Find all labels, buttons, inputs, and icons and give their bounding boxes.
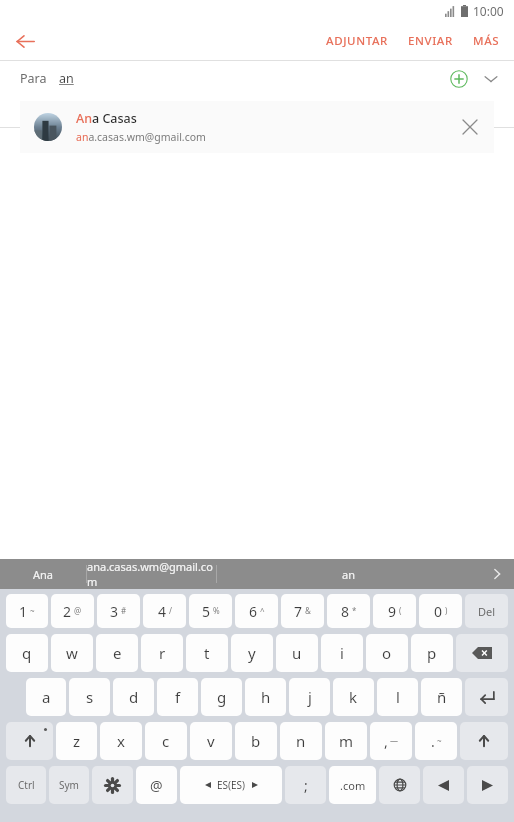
staticText: r	[159, 643, 166, 663]
staticText: ES(ES)	[217, 778, 246, 792]
button[interactable]: v	[190, 722, 232, 760]
staticText: 2	[63, 602, 72, 621]
button[interactable]: Remove recipient	[452, 109, 488, 145]
button[interactable]: Move left	[423, 766, 464, 804]
button[interactable]: u	[276, 634, 318, 672]
button[interactable]: Settings	[92, 766, 133, 804]
staticText: n	[296, 731, 306, 751]
button[interactable]: i	[321, 634, 363, 672]
button[interactable]: 1	[6, 594, 48, 628]
button[interactable]: p	[411, 634, 453, 672]
button[interactable]: .	[415, 722, 457, 760]
button[interactable]: Del	[465, 594, 508, 628]
staticText: b	[251, 731, 261, 751]
staticText: ,	[384, 732, 388, 751]
button[interactable]: 2	[51, 594, 94, 628]
staticText: 5	[202, 602, 211, 621]
button[interactable]: q	[6, 634, 48, 672]
button[interactable]: b	[235, 722, 277, 760]
button[interactable]: Language	[379, 766, 420, 804]
staticText: @	[150, 776, 163, 795]
staticText: d	[129, 687, 139, 707]
button[interactable]: 9	[373, 594, 416, 628]
button[interactable]: g	[201, 678, 242, 716]
staticText: l	[396, 687, 400, 707]
button[interactable]: 0	[419, 594, 462, 628]
button[interactable]: 7	[281, 594, 324, 628]
button[interactable]: 4	[143, 594, 186, 628]
staticText: q	[22, 643, 32, 663]
button[interactable]: Back	[8, 24, 42, 58]
staticText: k	[349, 687, 358, 707]
button[interactable]: ;	[285, 766, 326, 804]
staticText: 6	[249, 602, 258, 621]
button[interactable]: s	[69, 678, 110, 716]
button[interactable]: @	[136, 766, 177, 804]
button[interactable]: h	[245, 678, 286, 716]
button[interactable]: 3	[97, 594, 140, 628]
button[interactable]: ENVIAR	[406, 27, 455, 55]
staticText: 9	[388, 602, 397, 621]
button[interactable]: ñ	[421, 678, 462, 716]
staticText: MÁS	[473, 33, 500, 49]
button[interactable]: ADJUNTAR	[324, 27, 390, 55]
button[interactable]: o	[366, 634, 408, 672]
staticText: x	[117, 731, 125, 751]
staticText: ~	[437, 735, 442, 746]
button[interactable]: f	[157, 678, 198, 716]
button[interactable]: k	[333, 678, 374, 716]
staticText: 7	[294, 602, 303, 621]
button[interactable]: Ana Casas	[20, 101, 494, 153]
button[interactable]: d	[113, 678, 154, 716]
button[interactable]: c	[145, 722, 187, 760]
button[interactable]: m	[325, 722, 367, 760]
button[interactable]: More suggestions	[480, 559, 514, 589]
button[interactable]: ,	[370, 722, 412, 760]
button[interactable]: 8	[327, 594, 370, 628]
button[interactable]: w	[51, 634, 93, 672]
button[interactable]: .com	[329, 766, 376, 804]
button[interactable]: an	[217, 559, 480, 589]
staticText: u	[292, 643, 302, 663]
button[interactable]: 5	[189, 594, 232, 628]
staticText: )	[445, 605, 448, 616]
staticText: ^	[260, 605, 265, 616]
staticText: s	[86, 687, 94, 707]
staticText: m	[339, 731, 354, 751]
button[interactable]: z	[56, 722, 97, 760]
staticText: @	[74, 605, 82, 616]
button[interactable]: backspace	[456, 634, 508, 672]
button[interactable]: t	[186, 634, 228, 672]
button[interactable]: n	[280, 722, 322, 760]
button[interactable]: ES(ES)	[180, 766, 282, 804]
button[interactable]: MÁS	[471, 27, 502, 55]
button[interactable]: a	[26, 678, 66, 716]
button[interactable]: Ana	[0, 559, 86, 589]
staticText: ADJUNTAR	[326, 33, 388, 49]
staticText: ~	[30, 605, 35, 616]
staticText: o	[382, 643, 392, 663]
button[interactable]: r	[141, 634, 183, 672]
button[interactable]: Sym	[49, 766, 89, 804]
staticText: v	[207, 731, 215, 751]
button[interactable]: shiftdot	[6, 722, 53, 760]
staticText: an	[342, 567, 355, 582]
button[interactable]: y	[231, 634, 273, 672]
button[interactable]: Expand	[478, 66, 504, 92]
button[interactable]: ana.casas.wm@gmail.com	[87, 559, 216, 589]
staticText: ;	[304, 776, 308, 795]
button[interactable]: 6	[235, 594, 278, 628]
button[interactable]: shift	[460, 722, 508, 760]
button[interactable]: Move right	[467, 766, 508, 804]
button[interactable]: x	[100, 722, 142, 760]
staticText: g	[217, 687, 227, 707]
button[interactable]: Ctrl	[6, 766, 46, 804]
button[interactable]: l	[377, 678, 418, 716]
button[interactable]: e	[96, 634, 138, 672]
button[interactable]: Add recipient	[446, 66, 472, 92]
button[interactable]: enter	[465, 678, 508, 716]
staticText: Para	[20, 70, 47, 87]
staticText: ñ	[437, 687, 447, 707]
button[interactable]: j	[289, 678, 330, 716]
staticText: ana.casas.wm@gmail.com	[87, 559, 216, 589]
